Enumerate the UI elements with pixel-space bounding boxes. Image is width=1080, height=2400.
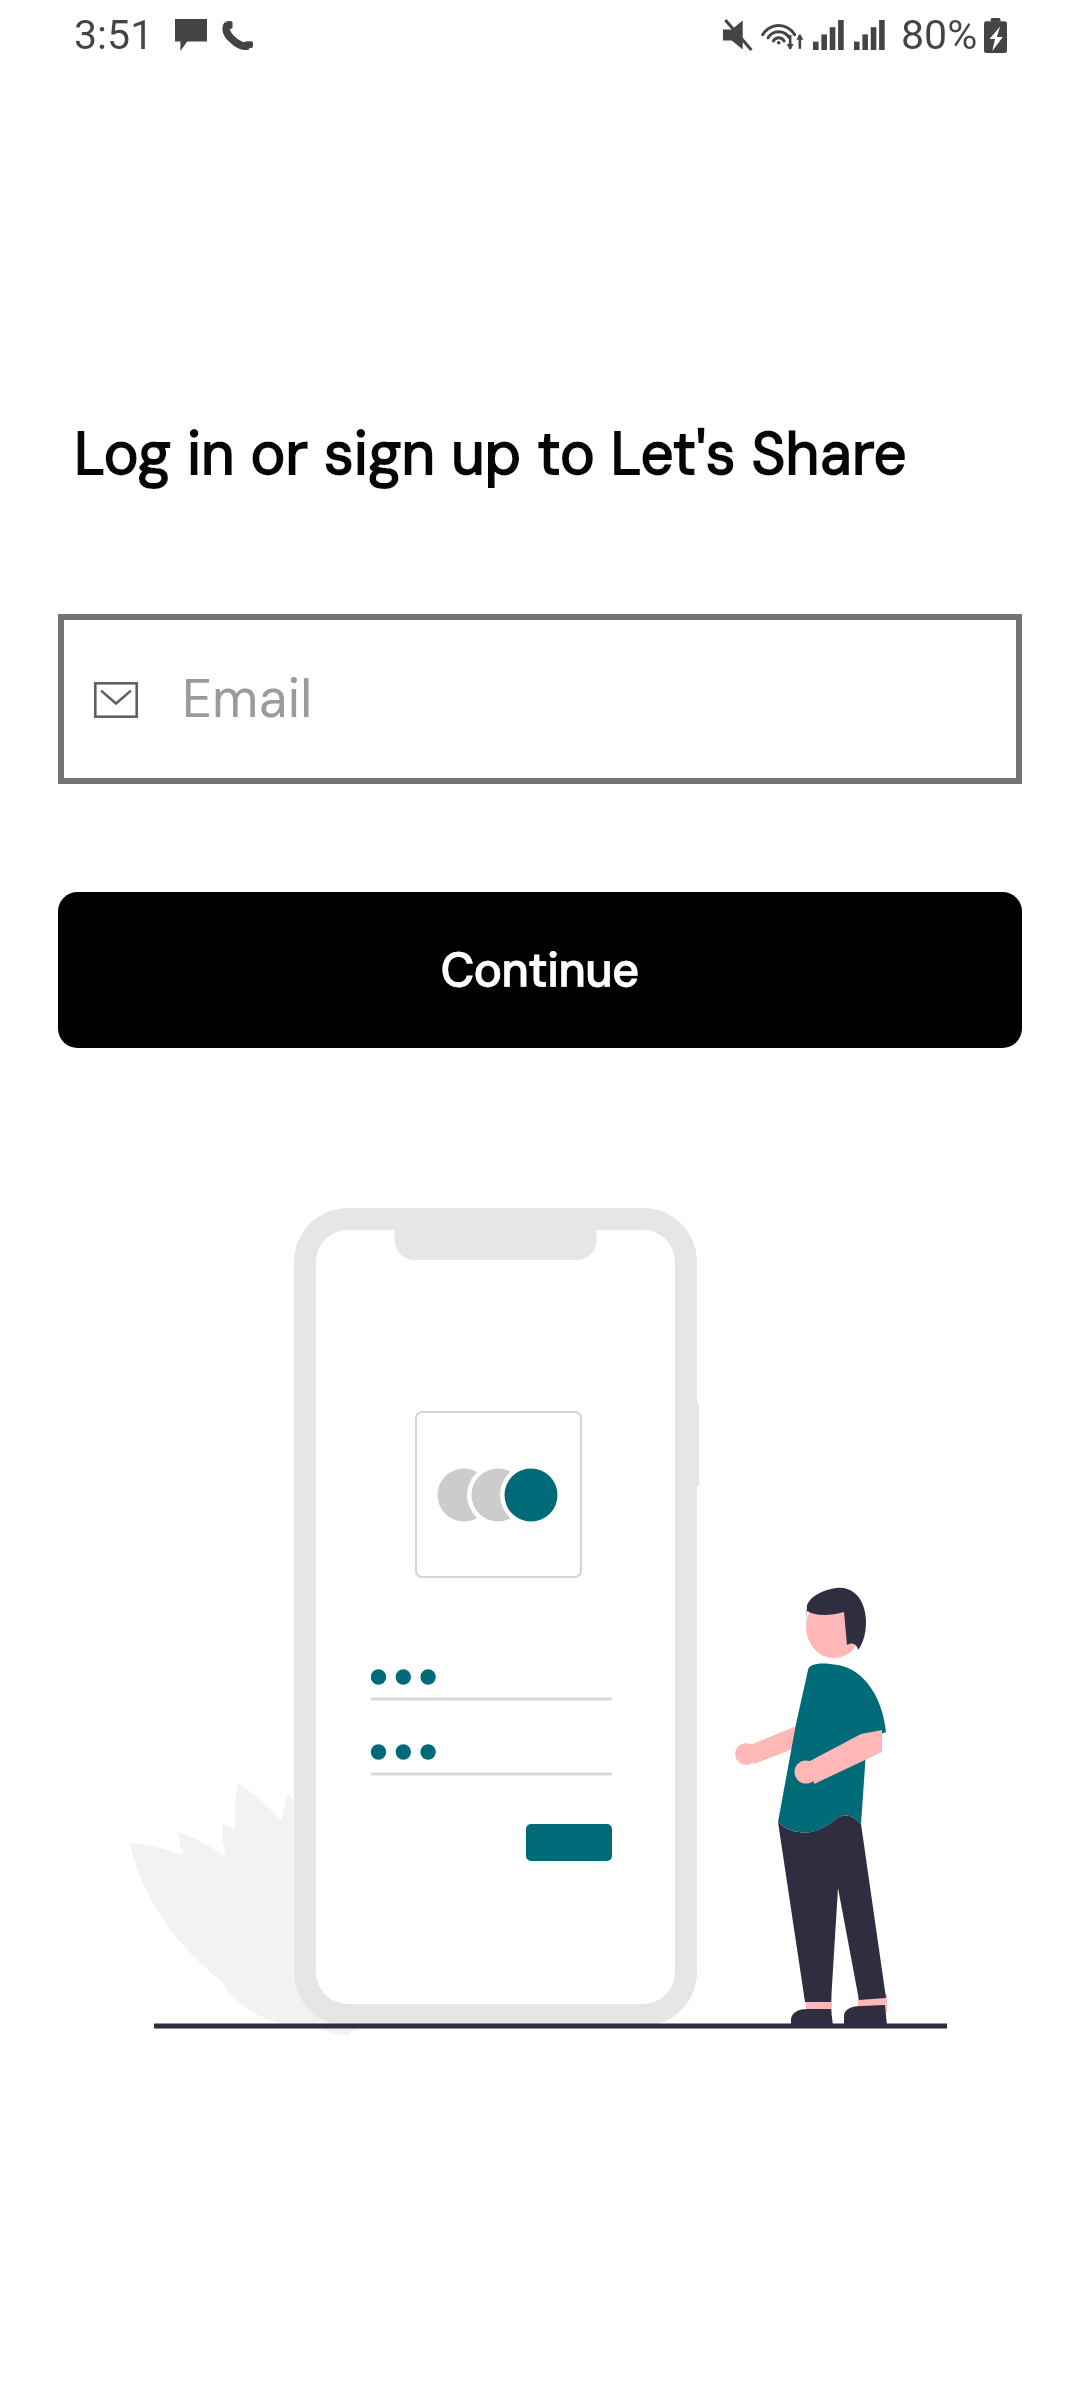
- button[interactable]: Email: [58, 614, 1022, 784]
- staticText: Log in or sign up to Let's Share: [74, 416, 907, 492]
- staticText: 3:51: [74, 11, 154, 59]
- staticText: 80%: [901, 11, 978, 59]
- button[interactable]: Continue: [58, 892, 1022, 1048]
- staticText: Continue: [441, 940, 639, 1001]
- staticText: Email: [182, 665, 313, 734]
